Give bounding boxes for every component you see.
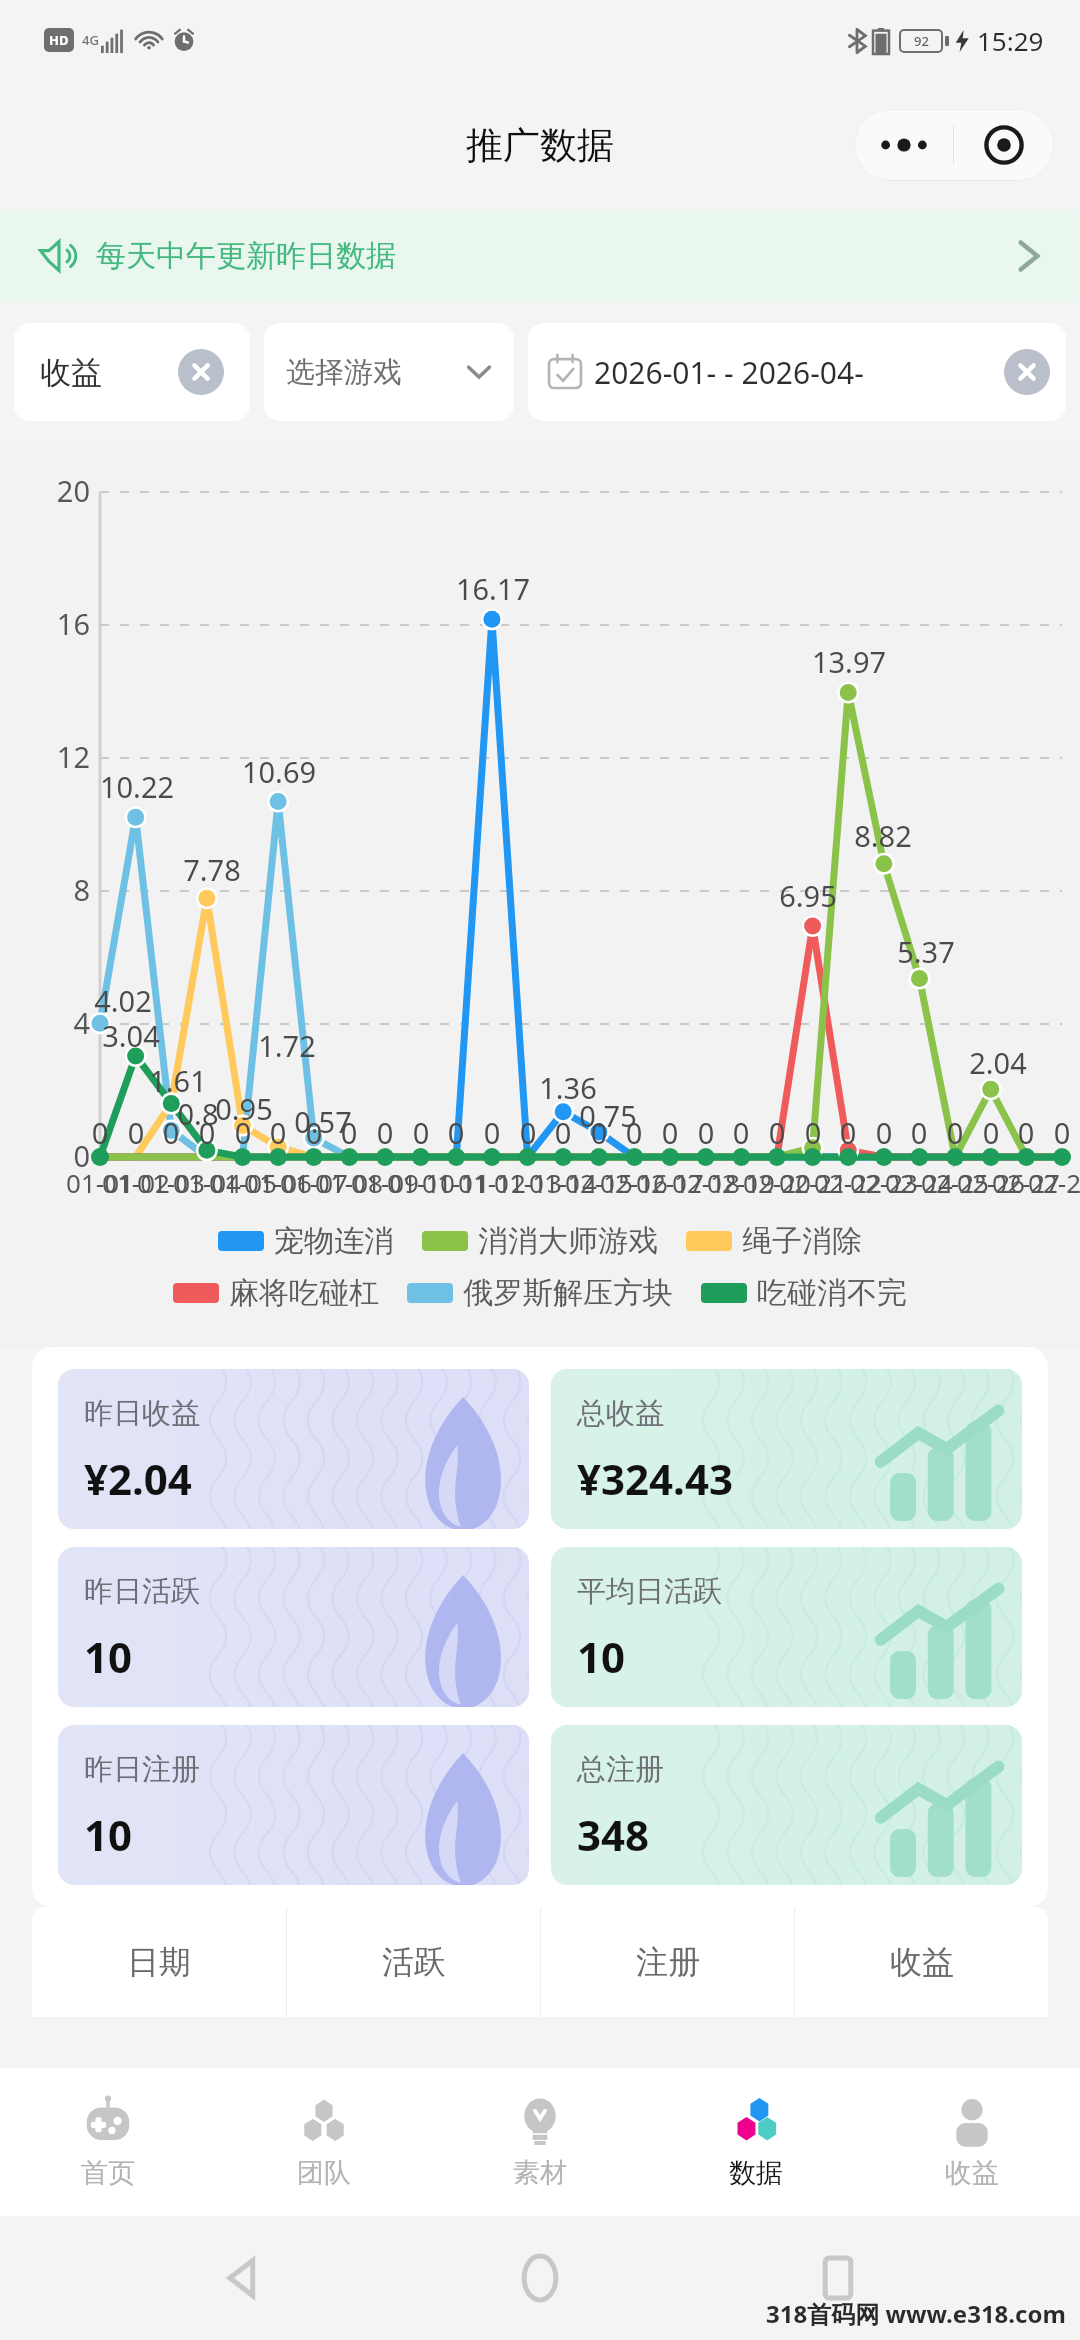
staticText: 日期 [127,1942,191,1982]
button[interactable]: Home [485,2223,595,2333]
staticText: 16.17 [438,569,548,608]
staticText: 8.82 [828,816,938,855]
staticText: 20 [30,471,90,510]
staticText: 收益 [890,1942,954,1982]
staticText: 0 [1008,1113,1044,1152]
button[interactable]: 收益 [795,1907,1048,2017]
staticText: 02-25 [895,1165,1015,1200]
staticText: 3.04 [76,1016,186,1055]
staticText: ¥2.04 [84,1450,192,1507]
staticText: 首页 [81,2156,135,2190]
button[interactable]: More options [854,109,953,181]
staticText: 10 [84,1806,133,1863]
staticText: 平均日活跃 [577,1573,722,1610]
staticText: 01-06 [218,1165,338,1200]
button[interactable]: 收益 [14,323,250,421]
staticText: 10.69 [224,752,334,791]
staticText: 0 [367,1113,403,1152]
staticText: 12 [30,737,90,776]
button[interactable]: 素材 [432,2068,648,2216]
staticText: 俄罗斯解压方块 [463,1274,673,1312]
staticText: 1.36 [513,1068,623,1107]
button[interactable]: 绳子消除 [686,1222,862,1260]
button[interactable]: 数据 [648,2068,864,2216]
staticText: 数据 [729,2156,783,2190]
button[interactable]: 首页 [0,2068,216,2216]
button[interactable]: 总收益 [551,1369,1022,1529]
button[interactable]: 平均日活跃 [551,1547,1022,1707]
staticText: 0 [438,1113,474,1152]
staticText: 收益 [40,353,102,392]
button[interactable]: 昨日活跃 [58,1547,529,1707]
staticText: 02-22 [788,1165,908,1200]
staticText: 7.78 [157,850,267,889]
staticText: 0 [759,1113,795,1152]
staticText: 总注册 [577,1751,664,1788]
staticText: 0 [403,1113,439,1152]
button[interactable]: 消消大师游戏 [422,1222,658,1260]
staticText: 348 [577,1806,650,1863]
staticText: 0 [260,1113,296,1152]
staticText: 01-10 [361,1165,481,1200]
staticText: 01-01 [40,1165,160,1200]
staticText: 0 [474,1113,510,1152]
button[interactable]: 注册 [541,1907,794,2017]
button[interactable]: 麻将吃碰杠 [173,1274,379,1312]
button[interactable]: 每天中午更新昨日数据 [0,210,1080,302]
staticText: 昨日活跃 [84,1573,200,1610]
staticText: 0 [225,1113,261,1152]
staticText: 02-18 [646,1165,766,1200]
staticText: 1.72 [232,1026,342,1065]
button[interactable]: 宠物连消 [218,1222,394,1260]
staticText: 总收益 [577,1395,664,1432]
button[interactable]: Close [954,109,1054,181]
staticText: HD [49,31,69,49]
staticText: 注册 [636,1942,700,1982]
button[interactable]: Clear [1004,349,1050,395]
staticText: 10 [577,1628,626,1685]
staticText: 0 [901,1113,937,1152]
staticText: 01-09 [325,1165,445,1200]
button[interactable]: Clear [178,349,224,395]
button[interactable]: 2026-01- - 2026-04- [528,323,1066,421]
button[interactable]: 日期 [32,1907,286,2017]
staticText: 92 [914,32,929,50]
staticText: 6.95 [753,876,863,915]
staticText: 0 [331,1113,367,1152]
button[interactable]: 总注册 [551,1725,1022,1885]
staticText: 5.37 [871,932,981,971]
button[interactable]: 昨日收益 [58,1369,529,1529]
staticText: 0 [652,1113,688,1152]
staticText: 02-28 [1002,1165,1080,1200]
button[interactable]: 团队 [216,2068,432,2216]
staticText: 0 [688,1113,724,1152]
staticText: 01-11 [396,1165,516,1200]
staticText: 0 [830,1113,866,1152]
staticText: 0 [866,1113,902,1152]
staticText: 15:29 [977,23,1044,58]
staticText: 02-26 [931,1165,1051,1200]
staticText: 每天中午更新昨日数据 [96,237,396,275]
button[interactable]: 吃碰消不完 [701,1274,907,1312]
staticText: 10 [84,1628,133,1685]
staticText: 消消大师游戏 [478,1222,658,1260]
staticText: 收益 [945,2156,999,2190]
staticText: 0 [581,1113,617,1152]
staticText: 活跃 [382,1942,446,1982]
staticText: 02-27 [966,1165,1080,1200]
button[interactable]: 收益 [864,2068,1080,2216]
button[interactable]: Recent apps [783,2223,893,2333]
staticText: 昨日注册 [84,1751,200,1788]
button[interactable]: 活跃 [287,1907,540,2017]
staticText: 0.95 [189,1089,299,1128]
staticText: 318首码网 www.e318.com [766,2297,1066,2330]
staticText: 选择游戏 [286,354,402,391]
button[interactable]: 昨日注册 [58,1725,529,1885]
button[interactable]: 选择游戏 [264,323,514,421]
staticText: 0 [795,1113,831,1152]
button[interactable]: 俄罗斯解压方块 [407,1274,673,1312]
staticText: 02-19 [681,1165,801,1200]
staticText: 2.04 [943,1043,1053,1082]
button[interactable]: Back [188,2223,298,2333]
staticText: 0 [723,1113,759,1152]
